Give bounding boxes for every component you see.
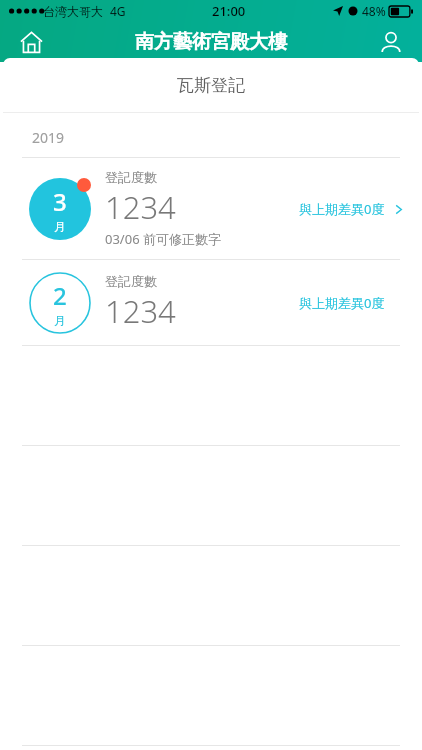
button[interactable]: Profile — [371, 22, 411, 62]
staticText: 月 — [54, 219, 66, 234]
staticText: 1234 — [105, 186, 176, 228]
staticText: 21:00 — [212, 2, 246, 20]
staticText: 2019 — [32, 128, 65, 147]
button[interactable]: 2 — [3, 260, 419, 345]
staticText: 4G — [110, 3, 126, 19]
staticText: 登記度數 — [105, 273, 157, 289]
staticText: 台湾大哥大 — [43, 4, 103, 19]
button[interactable]: 3 — [3, 158, 419, 259]
staticText: 與上期差異0度 — [299, 200, 385, 218]
button[interactable]: Home — [11, 22, 51, 62]
staticText: 03/06 前可修正數字 — [105, 230, 221, 248]
staticText: 2 — [53, 279, 67, 312]
staticText: 與上期差異0度 — [299, 294, 385, 312]
staticText: 1234 — [105, 290, 176, 332]
staticText: 3 — [53, 185, 67, 218]
staticText: 南方藝術宮殿大樓 — [135, 30, 287, 54]
staticText: 48% — [362, 3, 386, 19]
staticText: 登記度數 — [105, 169, 157, 185]
staticText: 月 — [54, 313, 66, 328]
staticText: 瓦斯登記 — [177, 75, 245, 96]
